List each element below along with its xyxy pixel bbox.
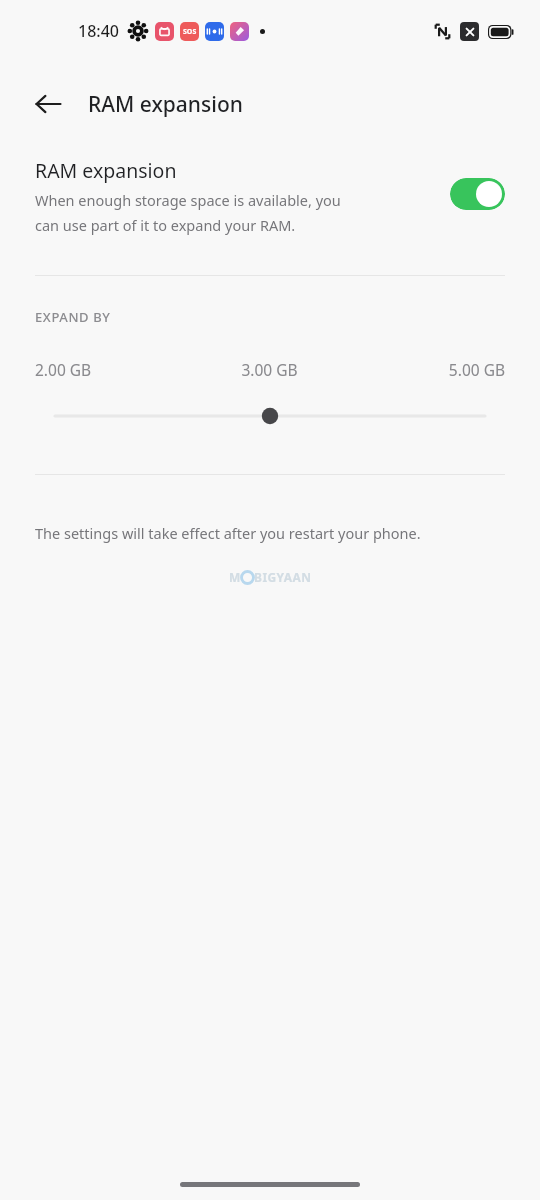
staticText: M	[229, 569, 241, 585]
button[interactable]: Expand by slider, 3.00 GB	[0, 402, 540, 430]
staticText: The settings will take effect after you …	[35, 523, 421, 543]
staticText: BIGYAAN	[254, 569, 312, 585]
staticText: 3.00 GB	[191, 359, 348, 380]
button[interactable]: Back	[22, 78, 74, 130]
staticText: When enough storage space is available, …	[35, 190, 341, 235]
staticText: 18:40	[78, 20, 119, 42]
button[interactable]: RAM expansion	[0, 146, 540, 235]
staticText: SOS	[183, 27, 197, 37]
staticText: EXPAND BY	[35, 308, 111, 326]
staticText: 2.00 GB	[35, 359, 191, 380]
staticText: RAM expansion	[35, 157, 177, 184]
staticText: 5.00 GB	[348, 359, 505, 380]
button[interactable]: RAM expansion toggle, on	[450, 178, 505, 210]
staticText: RAM expansion	[88, 90, 243, 119]
